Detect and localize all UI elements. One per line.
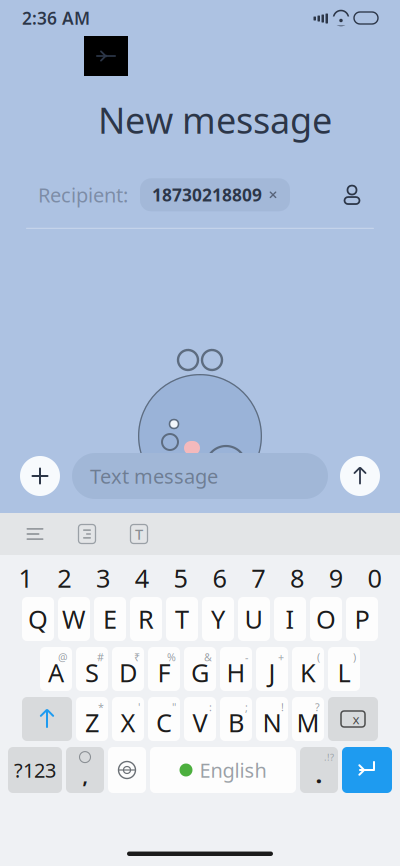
button[interactable]: ?123 <box>8 747 62 793</box>
button[interactable]: 1 <box>6 561 45 595</box>
button[interactable]: Choose contact <box>332 176 372 214</box>
staticText: Text message <box>90 463 218 489</box>
button[interactable]: ) <box>328 647 360 691</box>
staticText: @ <box>58 650 68 664</box>
button[interactable]: Enter <box>342 747 392 793</box>
button[interactable]: Keyboard menu <box>20 519 50 549</box>
button[interactable]: % <box>148 647 180 691</box>
button[interactable]: " <box>148 697 180 741</box>
button[interactable]: 8 <box>278 561 316 595</box>
staticText: 9 <box>329 561 343 595</box>
staticText: 2:36 AM <box>22 6 90 29</box>
button[interactable]: + <box>256 647 288 691</box>
button[interactable]: Shift <box>22 697 72 741</box>
button[interactable]: Add attachment <box>20 456 60 496</box>
button[interactable]: & <box>184 647 216 691</box>
button[interactable]: 7 <box>239 561 278 595</box>
button[interactable]: Text message <box>72 453 328 499</box>
staticText: ! <box>281 700 284 714</box>
staticText: , <box>82 764 87 788</box>
button[interactable]: Q <box>22 597 54 641</box>
button[interactable]: W <box>58 597 90 641</box>
button[interactable]: 6 <box>200 561 239 595</box>
staticText: R <box>138 602 154 636</box>
button[interactable]: 5 <box>161 561 200 595</box>
button[interactable]: P <box>346 597 378 641</box>
staticText: S <box>85 656 99 689</box>
button[interactable]: Change keyboard <box>108 747 146 793</box>
staticText: ₹ <box>134 650 140 664</box>
button[interactable]: Send <box>340 456 380 496</box>
staticText: 3 <box>96 561 110 595</box>
button[interactable]: Clipboard <box>72 519 102 549</box>
button[interactable]: 3 <box>84 561 122 595</box>
staticText: " <box>172 700 176 714</box>
button[interactable]: Delete <box>328 697 378 741</box>
staticText: B <box>228 706 244 739</box>
button[interactable]: R <box>130 597 162 641</box>
staticText: E <box>103 602 117 636</box>
button[interactable]: Text format <box>124 519 154 549</box>
button[interactable]: ' <box>112 697 144 741</box>
button[interactable]: 9 <box>316 561 355 595</box>
staticText: : <box>209 700 212 714</box>
staticText: K <box>300 656 316 689</box>
staticText: - <box>245 650 248 664</box>
staticText: I <box>285 602 294 636</box>
staticText: 18730218809 <box>152 183 262 206</box>
button[interactable]: Period <box>300 747 338 793</box>
staticText: O <box>316 602 336 636</box>
staticText: D <box>119 656 137 689</box>
button[interactable]: ? <box>292 697 324 741</box>
staticText: New message <box>98 96 332 144</box>
button[interactable]: 18730218809 <box>140 178 290 211</box>
button[interactable]: ! <box>256 697 288 741</box>
button[interactable]: T <box>166 597 198 641</box>
button[interactable]: O <box>310 597 342 641</box>
button[interactable]: Back <box>84 36 128 76</box>
staticText: Y <box>211 602 225 636</box>
button[interactable]: Emoji and comma <box>66 747 104 793</box>
button[interactable]: I <box>274 597 306 641</box>
button[interactable]: U <box>238 597 270 641</box>
staticText: N <box>262 706 281 739</box>
staticText: ; <box>245 700 248 714</box>
button[interactable]: 2 <box>45 561 84 595</box>
button[interactable]: - <box>220 647 252 691</box>
staticText: V <box>192 706 207 739</box>
staticText: Z <box>85 706 99 739</box>
staticText: ' <box>138 700 140 714</box>
button[interactable]: 4 <box>122 561 161 595</box>
button[interactable]: 0 <box>355 561 394 595</box>
staticText: 2 <box>57 561 71 595</box>
staticText: ) <box>353 650 356 664</box>
button[interactable]: ( <box>292 647 324 691</box>
button[interactable]: @ <box>40 647 72 691</box>
staticText: 0 <box>368 561 382 595</box>
staticText: F <box>157 656 170 689</box>
staticText: 7 <box>251 561 265 595</box>
button[interactable]: Y <box>202 597 234 641</box>
staticText: * <box>98 700 104 714</box>
button[interactable]: ₹ <box>112 647 144 691</box>
staticText: ? <box>315 700 320 714</box>
button[interactable]: # <box>76 647 108 691</box>
staticText: # <box>97 650 104 664</box>
staticText: T <box>175 602 189 636</box>
button[interactable]: English <box>150 747 296 793</box>
staticText: J <box>268 656 275 689</box>
button[interactable]: : <box>184 697 216 741</box>
staticText: Recipient: <box>38 181 128 208</box>
staticText: Q <box>28 602 48 636</box>
staticText: English <box>199 757 266 783</box>
button[interactable]: E <box>94 597 126 641</box>
staticText: T <box>135 524 143 544</box>
staticText: W <box>62 602 86 636</box>
staticText: 5 <box>174 561 188 595</box>
staticText: L <box>337 656 350 689</box>
staticText: ?123 <box>14 757 56 783</box>
staticText: G <box>191 656 209 689</box>
button[interactable]: ; <box>220 697 252 741</box>
staticText: P <box>354 602 369 636</box>
button[interactable]: * <box>76 697 108 741</box>
